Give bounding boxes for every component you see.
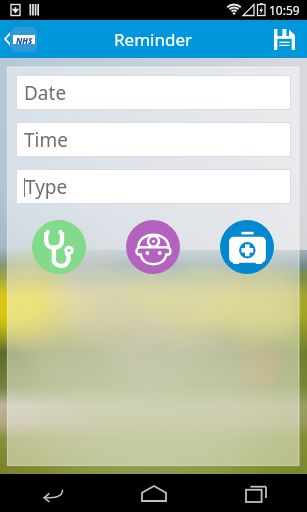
button[interactable]: Type xyxy=(16,169,291,204)
button[interactable]: Time xyxy=(16,122,291,157)
staticText: Reminder xyxy=(114,28,193,51)
staticText: NHS xyxy=(16,35,33,44)
button[interactable]: Stethoscope xyxy=(32,220,86,274)
button[interactable]: Home xyxy=(103,474,205,512)
staticText: Type xyxy=(25,174,68,200)
staticText: Date xyxy=(24,80,67,106)
button[interactable]: Back xyxy=(0,20,37,58)
button[interactable]: Date xyxy=(16,75,291,110)
button[interactable]: Doctor xyxy=(126,220,180,274)
button[interactable]: Save xyxy=(262,20,307,58)
button[interactable]: Back xyxy=(0,474,103,512)
button[interactable]: Recents xyxy=(205,474,307,512)
button[interactable]: First aid kit xyxy=(220,220,274,274)
staticText: 10:59 xyxy=(269,2,300,18)
staticText: Time xyxy=(24,127,68,153)
